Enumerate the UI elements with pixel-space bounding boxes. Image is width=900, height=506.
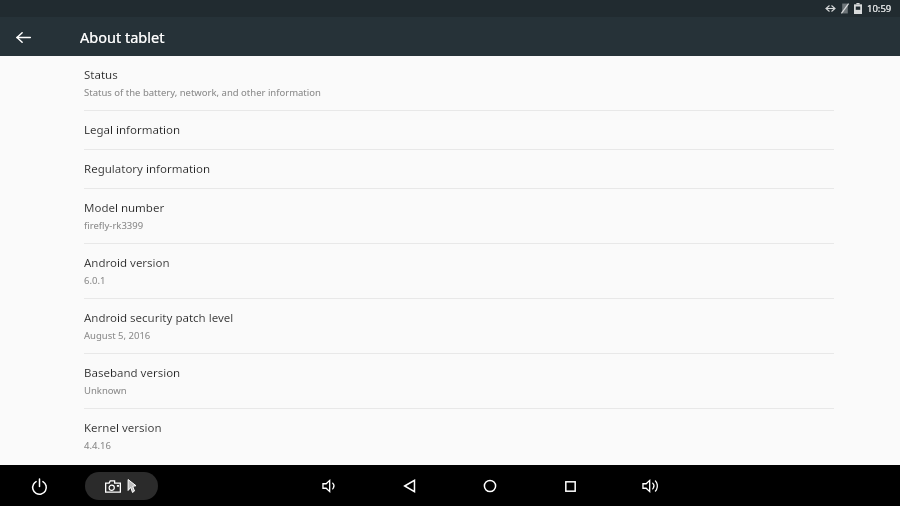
staticText: Model number — [84, 200, 165, 216]
button[interactable]: Volume down — [315, 471, 345, 501]
button[interactable]: Status — [0, 56, 900, 110]
staticText: Kernel version — [84, 420, 162, 436]
staticText: Status of the battery, network, and othe… — [84, 86, 321, 99]
button[interactable]: Android security patch level — [0, 299, 900, 353]
staticText: Legal information — [84, 122, 181, 138]
staticText: Unknown — [84, 384, 127, 397]
button[interactable]: Recent apps — [555, 471, 585, 501]
button[interactable]: Android version — [0, 244, 900, 298]
button[interactable]: Back — [7, 21, 39, 53]
staticText: About tablet — [80, 27, 165, 47]
button[interactable]: Baseband version — [0, 354, 900, 408]
button[interactable]: Volume up — [635, 471, 665, 501]
button[interactable]: Legal information — [0, 111, 900, 149]
button[interactable]: Model number — [0, 189, 900, 243]
staticText: Regulatory information — [84, 161, 211, 177]
button[interactable]: Kernel version — [0, 409, 900, 465]
staticText: Android security patch level — [84, 310, 234, 326]
staticText: firefly-rk3399 — [84, 219, 144, 232]
button[interactable]: Screenshot — [85, 472, 158, 500]
button[interactable]: Home — [475, 471, 505, 501]
staticText: Status — [84, 67, 118, 83]
staticText: 6.0.1 — [84, 274, 106, 287]
staticText: August 5, 2016 — [84, 329, 151, 342]
staticText: Baseband version — [84, 365, 181, 381]
button[interactable]: Back — [395, 471, 425, 501]
button[interactable]: Regulatory information — [0, 150, 900, 188]
button[interactable]: Power — [24, 471, 54, 501]
staticText: 10:59 — [867, 2, 892, 15]
staticText: Android version — [84, 255, 170, 271]
staticText: 4.4.16 liangkd@tchip-server #965 Tue Feb… — [84, 439, 216, 454]
